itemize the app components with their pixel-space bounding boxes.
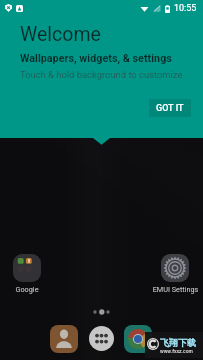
staticText: www.fxxz.com — [160, 348, 193, 354]
button[interactable]: All apps — [89, 326, 114, 351]
button[interactable]: Chrome — [124, 325, 152, 353]
staticText: 飞翔下载 — [160, 337, 196, 348]
staticText: Google — [9, 285, 45, 294]
staticText: GOT IT — [156, 103, 184, 114]
staticText: Wallpapers, widgets, & settings — [20, 52, 172, 65]
staticText: Touch & hold background to customize — [20, 69, 183, 80]
staticText: 10:55 — [174, 3, 197, 14]
button[interactable]: Contacts — [50, 325, 78, 353]
staticText: Welcome — [20, 23, 101, 46]
button[interactable]: GOT IT — [149, 99, 191, 117]
button[interactable] — [161, 254, 189, 282]
button[interactable] — [13, 254, 41, 282]
staticText: EMUI Settings — [147, 285, 203, 294]
